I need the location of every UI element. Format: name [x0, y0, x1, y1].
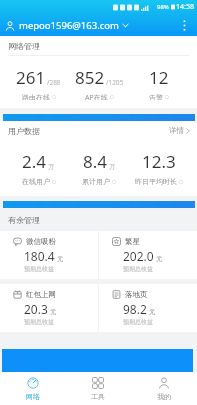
button[interactable]: 8.4 — [69, 150, 129, 186]
button[interactable]: 12 — [129, 66, 189, 100]
staticText: 预期总收益 — [123, 265, 153, 273]
staticText: 落地页 — [125, 290, 148, 299]
staticText: 元 — [156, 255, 163, 263]
staticText: 98.2 — [123, 301, 147, 317]
staticText: 我的 — [157, 392, 171, 401]
staticText: /288 — [47, 78, 61, 87]
staticText: 261 — [16, 66, 46, 89]
button[interactable]: 繁星 — [99, 231, 197, 279]
staticText: AP在线 — [85, 93, 108, 100]
staticText: 有余管理 — [8, 215, 40, 225]
staticText: 元 — [149, 308, 156, 316]
button[interactable]: 2.4 — [8, 150, 69, 186]
staticText: 网络管理 — [8, 41, 40, 51]
staticText: 详情 — [169, 126, 184, 135]
button[interactable]: 红包上网 — [0, 284, 98, 332]
staticText: 告警 — [149, 93, 163, 100]
button[interactable]: 落地页 — [99, 284, 197, 332]
button[interactable]: 我的 — [131, 372, 197, 405]
staticText: 元 — [57, 255, 64, 263]
staticText: 工具 — [91, 392, 105, 401]
button[interactable]: 微信吸粉 — [0, 231, 98, 279]
staticText: 预期总收益 — [123, 318, 153, 326]
staticText: 万 — [48, 163, 55, 171]
staticText: 累计用户 — [82, 177, 110, 186]
staticText: 202.0 — [123, 248, 154, 264]
staticText: 用户数据 — [8, 126, 40, 136]
staticText: 8.4 — [83, 150, 108, 173]
button[interactable]: 852 — [69, 66, 129, 100]
staticText: 180.4 — [24, 248, 55, 264]
staticText: 元 — [50, 308, 57, 316]
staticText: 万 — [109, 163, 116, 171]
button[interactable]: mepoo1596@163.com — [5, 19, 129, 32]
button[interactable]: 详情 — [169, 126, 190, 135]
staticText: 852 — [75, 66, 105, 89]
staticText: 12.3 — [142, 150, 176, 173]
staticText: 红包上网 — [26, 290, 56, 299]
staticText: 网络 — [26, 392, 40, 401]
staticText: 12 — [149, 66, 169, 89]
button[interactable]: 网络 — [0, 372, 65, 405]
staticText: 预期总收益 — [24, 318, 54, 326]
staticText: 98% — [157, 3, 169, 11]
button[interactable]: More options — [174, 15, 194, 35]
button[interactable]: 工具 — [65, 372, 131, 405]
staticText: 20.3 — [24, 301, 48, 317]
staticText: 繁星 — [125, 237, 140, 246]
staticText: 预期总收益 — [24, 265, 54, 273]
button[interactable]: 12.3 — [129, 150, 189, 186]
staticText: /1205 — [106, 78, 124, 87]
staticText: 昨日平均时长 — [135, 177, 177, 186]
staticText: mepoo1596@163.com — [19, 19, 119, 32]
button[interactable]: 261 — [8, 66, 69, 100]
staticText: 14:58 — [176, 2, 194, 12]
staticText: 2.4 — [22, 150, 47, 173]
staticText: 在线用户 — [22, 177, 50, 186]
staticText: 路由在线 — [22, 93, 50, 100]
staticText: 微信吸粉 — [26, 237, 56, 246]
